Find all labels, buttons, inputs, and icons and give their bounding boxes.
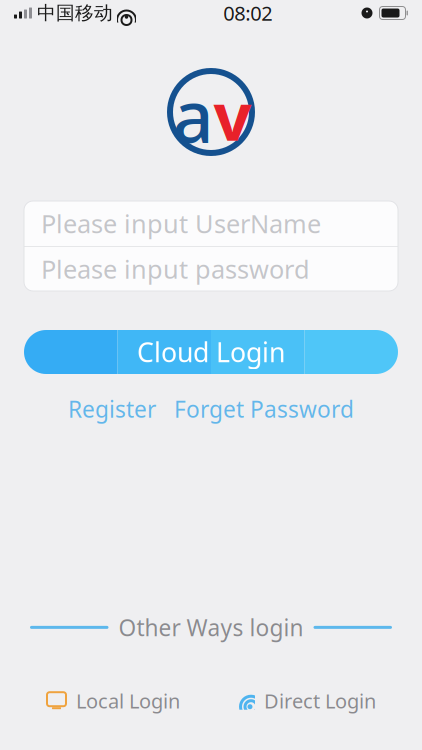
staticText: Please input UserName xyxy=(41,207,321,240)
staticText: Please input password xyxy=(41,252,310,286)
button[interactable]: Cloud Login xyxy=(0,330,422,374)
staticText: Direct Login xyxy=(264,687,376,714)
staticText: Forget Password xyxy=(174,394,354,424)
staticText: Cloud Login xyxy=(137,334,285,370)
staticText: 中国移动 xyxy=(37,1,113,24)
staticText: Register xyxy=(68,394,156,424)
button[interactable]: Direct Login xyxy=(235,681,376,720)
staticText: Local Login xyxy=(76,687,180,714)
staticText: 08:02 xyxy=(223,0,272,26)
button[interactable]: Register xyxy=(64,388,160,430)
button[interactable]: Local Login xyxy=(46,681,180,720)
staticText: a xyxy=(172,67,213,163)
staticText: v xyxy=(213,71,251,159)
button[interactable]: Forget Password xyxy=(170,388,358,430)
staticText: Other Ways login xyxy=(118,612,303,642)
